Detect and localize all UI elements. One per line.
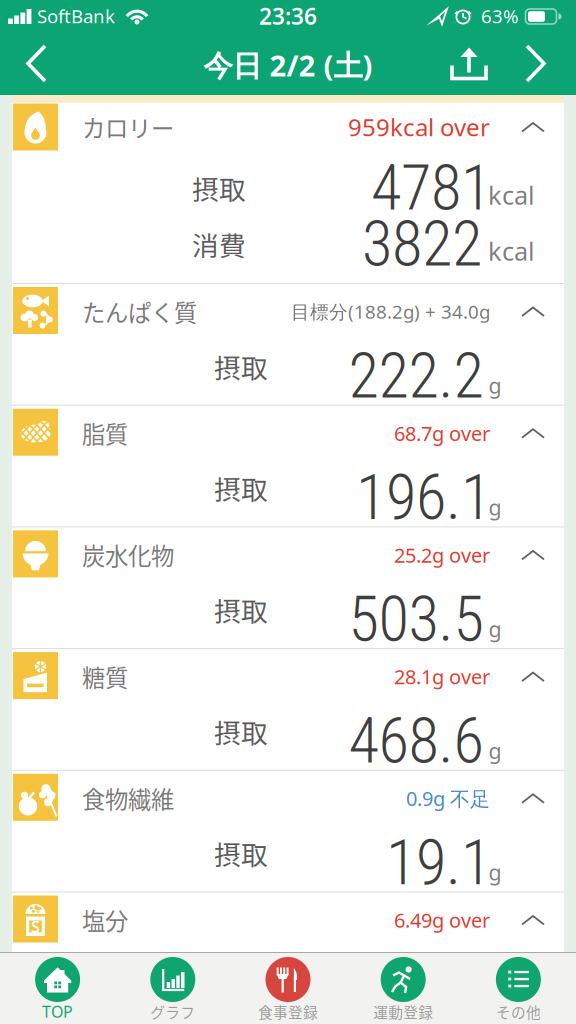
staticText: SoftBank	[37, 4, 115, 28]
staticText: その他	[496, 1001, 541, 1022]
staticText: 糖質	[82, 660, 128, 693]
staticText: 塩分	[82, 903, 128, 937]
button[interactable]: TOP	[0, 952, 115, 1024]
button[interactable]: 食事登録	[230, 952, 346, 1024]
staticText: 摂取	[192, 169, 246, 207]
button[interactable]: 炭水化物	[12, 527, 564, 649]
staticText: 摂取	[214, 347, 268, 386]
button[interactable]: カロリー	[12, 102, 564, 284]
staticText: kcal	[488, 178, 535, 212]
staticText: S	[31, 916, 40, 937]
staticText: 摂取	[214, 591, 268, 629]
staticText: 摂取	[214, 956, 268, 994]
button[interactable]: その他	[461, 952, 576, 1024]
staticText: 消費	[192, 225, 246, 263]
staticText: 食物繊維	[82, 781, 174, 815]
staticText: 6.49g over	[394, 907, 490, 933]
staticText: 炭水化物	[82, 538, 174, 572]
staticText: 目標分(188.2g) + 34.0g	[291, 299, 490, 324]
staticText: 28.1g over	[394, 663, 490, 690]
staticText: 運動登録	[373, 1001, 433, 1022]
staticText: カロリー	[82, 110, 174, 144]
staticText: g	[488, 493, 501, 521]
staticText: 3822	[362, 207, 482, 281]
staticText: kcal	[488, 234, 535, 268]
staticText: 68.7g over	[394, 420, 490, 446]
button[interactable]: 糖質	[12, 649, 564, 771]
button[interactable]	[517, 42, 557, 86]
staticText: 今日 2/2 (土)	[203, 45, 372, 85]
staticText: 摂取	[214, 469, 268, 507]
button[interactable]: 食物繊維	[12, 771, 564, 892]
staticText: 摂取	[214, 834, 268, 873]
staticText: たんぱく質	[82, 295, 197, 328]
staticText: g	[488, 858, 501, 886]
staticText: 196.1	[356, 461, 491, 534]
staticText: 19.1	[386, 826, 491, 899]
button[interactable]: たんぱく質	[12, 284, 564, 406]
staticText: g	[488, 615, 501, 643]
staticText: 25.2g over	[394, 542, 490, 568]
staticText: 222.2	[348, 339, 483, 413]
button[interactable]: S	[12, 892, 564, 1014]
staticText: TOP	[42, 1001, 73, 1022]
staticText: g	[488, 371, 501, 400]
staticText: グラフ	[150, 1001, 195, 1022]
staticText: 503.5	[348, 583, 483, 656]
staticText: 63%	[481, 4, 519, 28]
button[interactable]: グラフ	[115, 952, 230, 1024]
staticText: 脂質	[82, 416, 128, 450]
staticText: 468.6	[348, 704, 483, 778]
staticText: 0.9g 不足	[406, 785, 490, 812]
button[interactable]	[18, 42, 58, 86]
staticText: 摂取	[214, 712, 268, 751]
staticText: g	[488, 736, 501, 765]
button[interactable]	[449, 47, 489, 80]
button[interactable]: 脂質	[12, 406, 564, 527]
staticText: 4781	[371, 151, 491, 225]
staticText: 食事登録	[258, 1001, 318, 1022]
button[interactable]: 運動登録	[346, 952, 461, 1024]
staticText: 959kcal over	[348, 111, 490, 143]
staticText: 23:36	[259, 1, 317, 31]
